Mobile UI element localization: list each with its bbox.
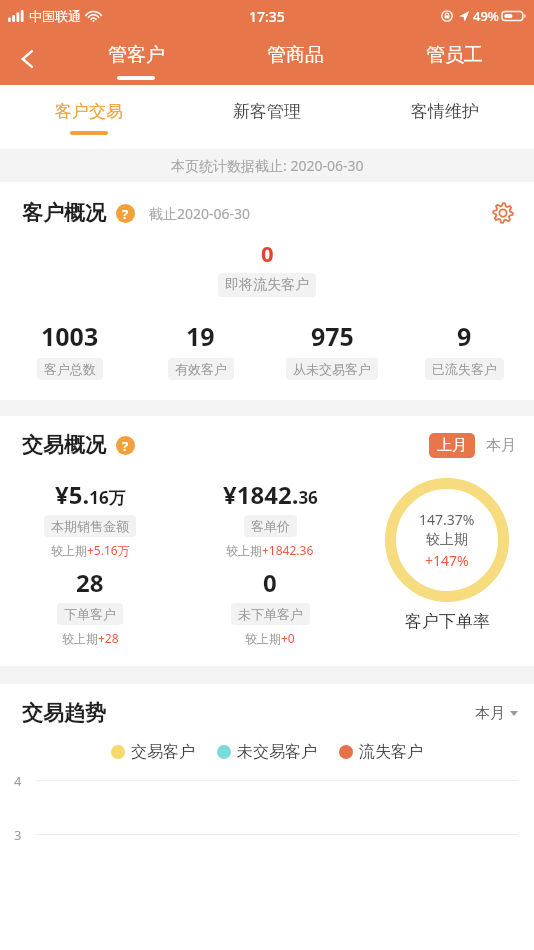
button[interactable]: 0 [180, 566, 360, 646]
staticText: 本期销售金额 [51, 518, 129, 534]
button[interactable]: 147.37% [360, 478, 534, 632]
staticText: 0 [261, 238, 274, 268]
button[interactable]: Back [0, 32, 56, 85]
staticText: 管客户 [108, 43, 165, 67]
staticText: 0 [263, 566, 277, 599]
staticText: 客户概况 [22, 200, 106, 226]
staticText: 未交易客户 [237, 742, 317, 762]
button[interactable]: 19 [135, 319, 266, 380]
staticText: 3 [14, 826, 22, 844]
staticText: 较上期 [426, 531, 468, 549]
staticText: 已流失客户 [432, 361, 497, 377]
staticText: 交易客户 [131, 742, 195, 762]
button[interactable]: Help [116, 204, 135, 223]
staticText: 客户总数 [44, 361, 96, 377]
staticText: 本月 [486, 436, 516, 455]
button[interactable]: 本月 [484, 433, 518, 458]
staticText: 管商品 [267, 43, 324, 67]
staticText: 下单客户 [64, 606, 116, 622]
button[interactable]: Help [116, 436, 135, 455]
staticText: ¥1842.36 [223, 478, 318, 511]
staticText: 4 [14, 772, 22, 790]
staticText: 较上期+5.16万 [51, 542, 130, 558]
button[interactable]: 流失客户 [339, 742, 423, 762]
button[interactable]: Settings [488, 198, 518, 228]
staticText: ? [122, 437, 129, 455]
staticText: 从未交易客户 [293, 361, 371, 377]
button[interactable]: 客情维护 [356, 85, 534, 149]
button[interactable]: 管商品 [216, 32, 375, 85]
button[interactable]: 上月 [429, 433, 475, 458]
staticText: 新客管理 [233, 101, 301, 122]
staticText: 28 [76, 566, 104, 599]
button[interactable]: 28 [0, 566, 180, 646]
staticText: 未下单客户 [238, 606, 303, 622]
staticText: 19 [186, 319, 215, 353]
staticText: 本页统计数据截止: 2020-06-30 [171, 156, 364, 175]
staticText: 本月 [475, 704, 505, 723]
staticText: 客情维护 [411, 101, 479, 122]
button[interactable]: 管客户 [56, 32, 216, 85]
staticText: ? [122, 205, 129, 223]
staticText: 交易概况 [22, 432, 106, 458]
staticText: 管员工 [426, 43, 483, 67]
staticText: ¥5.16万 [55, 478, 126, 511]
button[interactable]: 管员工 [375, 32, 534, 85]
staticText: 147.37% [419, 510, 475, 529]
staticText: +147% [425, 551, 469, 570]
staticText: 上月 [437, 436, 467, 455]
button[interactable]: 本月 [475, 704, 518, 723]
staticText: 1003 [41, 319, 99, 353]
staticText: 客单价 [251, 518, 290, 534]
staticText: 即将流失客户 [225, 276, 309, 294]
button[interactable]: ¥5.16万 [0, 478, 180, 558]
staticText: 较上期+28 [62, 630, 119, 646]
button[interactable]: 客户交易 [0, 85, 178, 149]
staticText: 客户交易 [55, 101, 123, 122]
button[interactable]: 未交易客户 [217, 742, 317, 762]
button[interactable]: 交易客户 [111, 742, 195, 762]
staticText: 截止2020-06-30 [149, 204, 251, 223]
staticText: 流失客户 [359, 742, 423, 762]
staticText: 中国联通 [29, 8, 81, 24]
staticText: 9 [457, 319, 472, 353]
button[interactable]: 新客管理 [178, 85, 356, 149]
staticText: 975 [311, 319, 354, 353]
button[interactable]: 1003 [4, 319, 135, 380]
staticText: 交易趋势 [22, 700, 106, 726]
staticText: 有效客户 [175, 361, 227, 377]
staticText: 较上期+1842.36 [226, 542, 314, 558]
button[interactable]: ¥1842.36 [180, 478, 360, 558]
button[interactable]: 975 [266, 319, 398, 380]
button[interactable]: 9 [398, 319, 530, 380]
staticText: 较上期+0 [245, 630, 295, 646]
staticText: 客户下单率 [405, 611, 490, 632]
staticText: 49% [473, 7, 499, 25]
staticText: 17:35 [249, 7, 285, 26]
